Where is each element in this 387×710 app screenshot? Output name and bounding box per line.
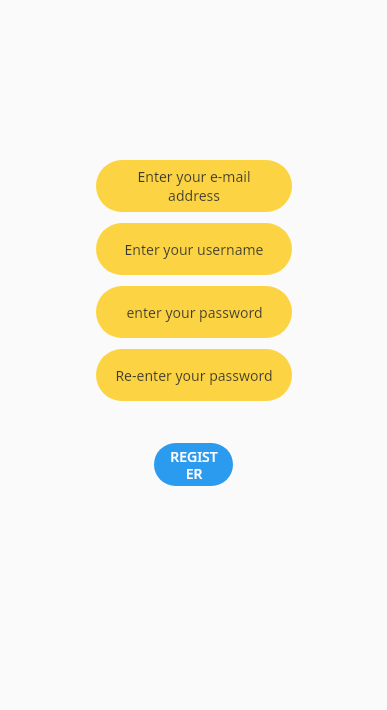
staticText: REGISTER [168, 447, 220, 483]
staticText: Enter your username [124, 240, 264, 259]
button[interactable]: REGISTER [154, 443, 233, 486]
staticText: Enter your e-mail address [110, 167, 278, 205]
staticText: enter your password [126, 303, 263, 322]
button[interactable]: Re-enter your password [96, 349, 292, 401]
button[interactable]: enter your password [96, 286, 292, 338]
button[interactable]: Enter your username [96, 223, 292, 275]
staticText: Re-enter your password [115, 366, 273, 385]
button[interactable]: Enter your e-mail address [96, 160, 292, 212]
